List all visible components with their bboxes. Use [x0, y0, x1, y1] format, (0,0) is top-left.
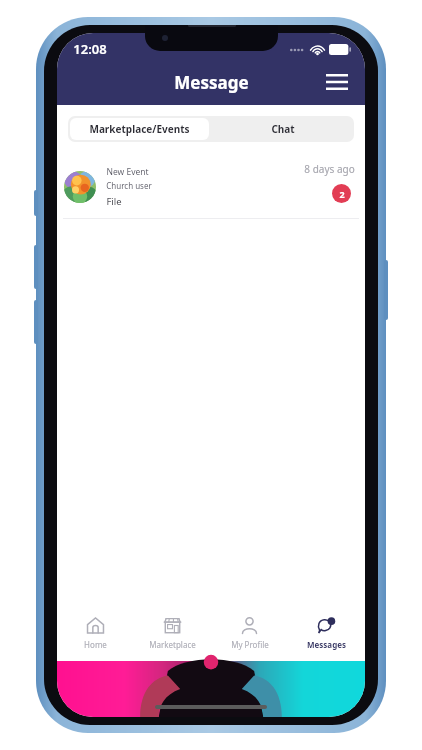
staticText: Church user: [106, 180, 152, 191]
staticText: Marketplace/Events: [89, 122, 190, 136]
staticText: Home: [84, 639, 107, 650]
staticText: 12:08: [73, 40, 107, 58]
staticText: 8 days ago: [304, 162, 355, 176]
button[interactable]: My Profile: [211, 605, 288, 661]
staticText: File: [106, 195, 122, 208]
staticText: Marketplace: [149, 639, 196, 650]
button[interactable]: Chat: [211, 116, 354, 142]
staticText: Chat: [271, 122, 295, 136]
button[interactable]: Messages: [288, 605, 365, 661]
button[interactable]: Marketplace/Events: [70, 118, 209, 140]
staticText: My Profile: [231, 639, 269, 650]
staticText: Message: [174, 71, 249, 94]
staticText: 2: [339, 188, 345, 200]
button[interactable]: Marketplace: [134, 605, 211, 661]
button[interactable]: Home: [57, 605, 134, 661]
staticText: New Event: [106, 166, 149, 178]
staticText: Messages: [307, 639, 346, 650]
button[interactable]: New Event: [57, 156, 365, 218]
button[interactable]: Menu: [317, 62, 357, 102]
